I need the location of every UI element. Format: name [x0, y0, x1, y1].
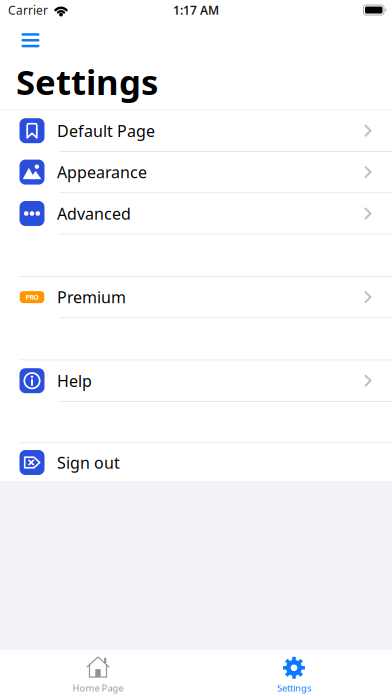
button[interactable]: Sign out — [0, 443, 392, 482]
staticText: Settings — [16, 58, 158, 104]
button[interactable]: Settings — [196, 652, 392, 694]
staticText: Premium — [57, 286, 126, 308]
button[interactable]: Home Page — [0, 652, 196, 694]
staticText: Default Page — [57, 120, 155, 141]
button[interactable]: Appearance — [0, 152, 392, 192]
staticText: Carrier — [8, 2, 48, 18]
button[interactable]: Help — [0, 360, 392, 401]
button[interactable]: PRO — [0, 277, 392, 317]
staticText: Sign out — [57, 452, 120, 473]
staticText: Settings — [277, 682, 311, 694]
staticText: Appearance — [57, 161, 147, 183]
button[interactable]: Default Page — [0, 110, 392, 151]
staticText: Advanced — [57, 203, 131, 224]
staticText: Help — [57, 370, 92, 391]
button[interactable]: Advanced — [0, 193, 392, 234]
staticText: Home Page — [72, 682, 123, 694]
staticText: 1:17 AM — [173, 2, 219, 18]
staticText: PRO — [25, 293, 38, 302]
button[interactable]: Menu — [21, 33, 39, 47]
